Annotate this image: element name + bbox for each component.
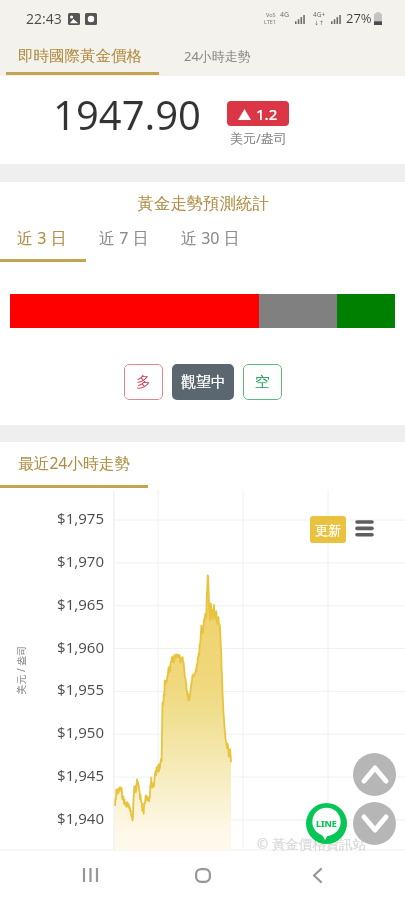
staticText: 美元 / 盎司 xyxy=(13,645,27,694)
button[interactable]: 黃金走勢預測統計 xyxy=(137,193,269,213)
staticText: $1,970 xyxy=(57,551,104,571)
staticText: $1,955 xyxy=(57,679,104,699)
button[interactable]: 近 7 日 xyxy=(84,226,164,250)
staticText: 即時國際黃金價格 xyxy=(18,46,142,66)
button[interactable]: Menu xyxy=(351,514,377,540)
staticText: 近 30 日 xyxy=(181,227,240,249)
staticText: 最近24小時走勢 xyxy=(18,452,131,473)
button[interactable]: 最近24小時走勢 xyxy=(0,452,131,474)
staticText: 1.2 xyxy=(256,104,278,124)
staticText: 近 7 日 xyxy=(99,227,149,249)
staticText: 觀望中 xyxy=(181,373,226,392)
staticText: 22:43 xyxy=(26,9,62,28)
button[interactable]: 多 xyxy=(124,364,163,400)
staticText: $1,940 xyxy=(57,808,104,828)
staticText: 4G xyxy=(280,10,290,20)
button[interactable]: 近 30 日 xyxy=(164,226,256,250)
button[interactable]: 更新 xyxy=(310,516,346,543)
staticText: LTE1 xyxy=(264,18,277,25)
staticText: LINE xyxy=(316,817,337,829)
button[interactable]: 24小時走勢 xyxy=(159,36,276,76)
button[interactable]: Scroll to top xyxy=(353,753,396,796)
staticText: 1947.90 xyxy=(53,87,201,141)
staticText: 近 3 日 xyxy=(17,227,67,249)
button[interactable]: Recent apps xyxy=(66,851,114,899)
staticText: VoS xyxy=(266,11,276,18)
button[interactable]: 觀望中 xyxy=(172,364,234,400)
staticText: 黃金走勢預測統計 xyxy=(137,193,269,213)
staticText: 24小時走勢 xyxy=(184,47,251,65)
staticText: 更新 xyxy=(315,522,341,538)
staticText: 空 xyxy=(255,373,270,392)
staticText: $1,960 xyxy=(57,637,104,657)
staticText: 美元/盎司 xyxy=(230,129,287,147)
staticText: $1,965 xyxy=(57,594,104,614)
button[interactable]: 近 3 日 xyxy=(0,226,84,250)
staticText: 多 xyxy=(136,373,151,392)
button[interactable]: 1.2 xyxy=(227,101,289,126)
staticText: 4G+ xyxy=(313,10,326,19)
staticText: ↓↑ xyxy=(314,19,325,26)
button[interactable]: Back xyxy=(293,851,341,899)
button[interactable]: 空 xyxy=(243,364,282,400)
button[interactable]: Home xyxy=(179,851,227,899)
staticText: © 黃金價格資訊站 xyxy=(257,835,367,853)
staticText: $1,950 xyxy=(57,722,104,742)
button[interactable]: Scroll to bottom xyxy=(353,802,396,845)
button[interactable]: 即時國際黃金價格 xyxy=(0,36,159,76)
button[interactable]: Share to LINE xyxy=(306,803,347,844)
staticText: 27% xyxy=(346,9,372,27)
staticText: $1,945 xyxy=(57,765,104,785)
staticText: $1,975 xyxy=(57,508,104,528)
